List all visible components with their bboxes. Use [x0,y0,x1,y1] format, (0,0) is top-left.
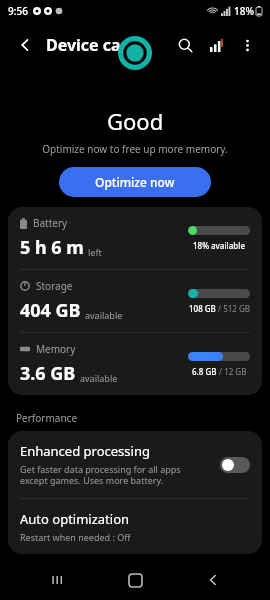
staticText: available [80,372,118,384]
staticText: 3.6 GB [20,361,76,386]
button[interactable]: Home [114,560,156,600]
button[interactable]: Search [170,30,200,60]
button[interactable]: Enhanced processing toggle [220,457,250,473]
staticText: Enhanced processing [20,442,150,460]
staticText: 404 GB [20,298,81,323]
staticText: left [88,246,102,258]
staticText: / 512 GB [216,303,250,314]
staticText: Auto optimization [20,510,130,528]
staticText: 18% available [193,240,246,251]
button[interactable]: Enhanced processing [8,431,262,498]
staticText: Optimize now [95,174,175,190]
staticText: / 12 GB [217,366,247,377]
staticText: Storage [36,279,73,293]
staticText: 6.8 GB [192,366,217,377]
button[interactable]: Usage statistics [202,30,232,60]
button[interactable]: Recent apps [36,560,78,600]
staticText: 108 GB [189,303,216,314]
staticText: available [85,309,123,321]
staticText: Restart when needed : Off [20,531,131,543]
button[interactable]: More options [234,32,260,58]
staticText: 9:56 [8,4,28,18]
staticText: Good [107,106,164,136]
button[interactable]: Memory [8,333,262,395]
staticText: Memory [36,342,76,356]
button[interactable]: Storage [8,270,262,332]
button[interactable]: Auto optimization [8,499,262,554]
staticText: Device care [46,34,138,56]
button[interactable]: Battery [8,207,262,269]
staticText: Get faster data processing for all apps … [20,463,210,487]
staticText: Performance [16,411,78,425]
staticText: 5 h 6 m [20,235,84,260]
button[interactable]: Optimize now [59,167,211,197]
staticText: 18% [234,4,254,18]
button[interactable]: Back [192,560,234,600]
button[interactable]: Back [10,30,40,60]
staticText: Optimize now to free up more memory. [42,142,228,156]
staticText: Battery [33,216,68,230]
